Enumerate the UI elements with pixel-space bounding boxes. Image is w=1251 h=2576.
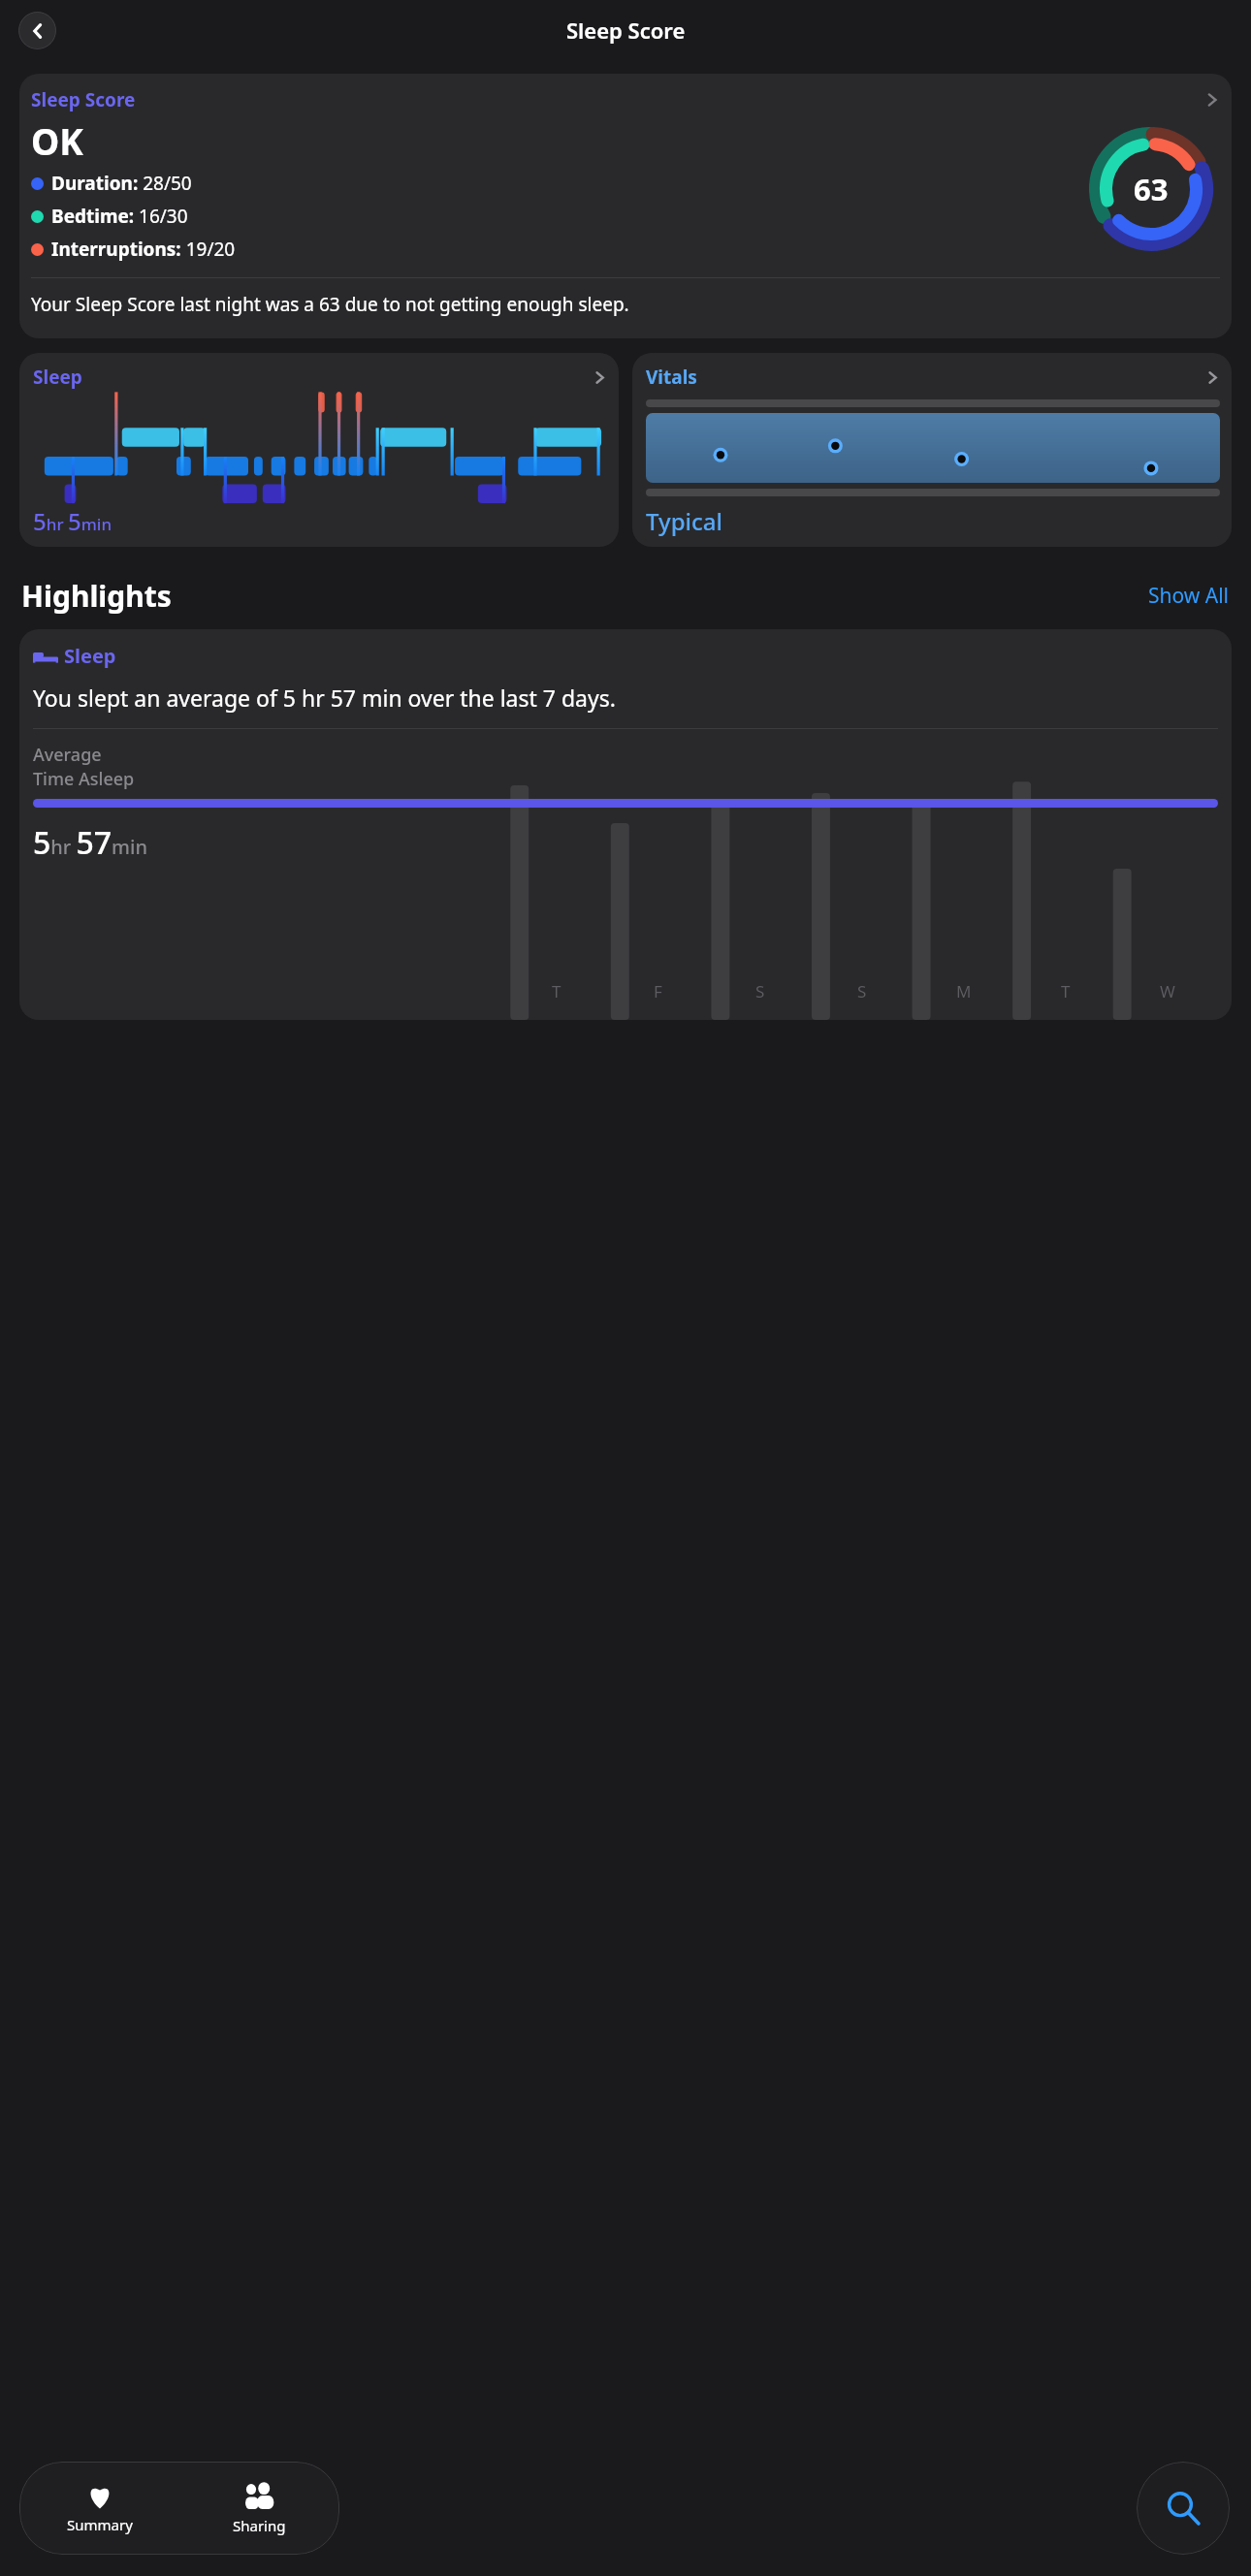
button[interactable]: Summary	[19, 2462, 179, 2555]
staticText: Typical	[646, 505, 723, 537]
staticText: Vitals	[646, 365, 697, 390]
staticText: Sleep Score	[566, 16, 686, 45]
staticText: Duration: 28/50	[51, 171, 192, 196]
staticText: Interruptions: 19/20	[51, 237, 236, 262]
staticText: W	[1160, 980, 1175, 1002]
staticText: Bedtime: 16/30	[51, 204, 188, 229]
staticText: You slept an average of 5 hr 57 min over…	[33, 683, 616, 713]
staticText: Your Sleep Score last night was a 63 due…	[31, 292, 629, 317]
button[interactable]: Search	[1137, 2462, 1230, 2555]
staticText: M	[956, 980, 972, 1002]
button[interactable]: Sleep Score	[19, 74, 1232, 338]
staticText: 5hr 57min	[33, 821, 147, 864]
staticText: Show All	[1148, 582, 1230, 610]
staticText: Sleep	[64, 643, 116, 669]
staticText: 63	[1134, 169, 1169, 209]
staticText: T	[552, 980, 561, 1002]
button[interactable]: Sleep	[19, 629, 1232, 1020]
button[interactable]: Back	[18, 12, 56, 49]
staticText: F	[654, 980, 662, 1002]
staticText: Sharing	[233, 2516, 286, 2535]
staticText: 5hr 5min	[33, 505, 112, 537]
staticText: Average	[33, 743, 102, 767]
button[interactable]: Vitals	[632, 353, 1232, 547]
button[interactable]: Sharing	[179, 2462, 339, 2555]
staticText: S	[755, 980, 765, 1002]
button[interactable]: Sleep	[19, 353, 619, 547]
staticText: Summary	[67, 2515, 133, 2534]
staticText: Sleep	[33, 365, 82, 390]
staticText: OK	[31, 116, 83, 165]
staticText: Highlights	[21, 576, 172, 616]
staticText: Time Asleep	[33, 767, 135, 791]
staticText: Sleep Score	[31, 87, 136, 112]
staticText: S	[857, 980, 867, 1002]
button[interactable]: Show All	[1148, 582, 1230, 610]
staticText: T	[1061, 980, 1071, 1002]
